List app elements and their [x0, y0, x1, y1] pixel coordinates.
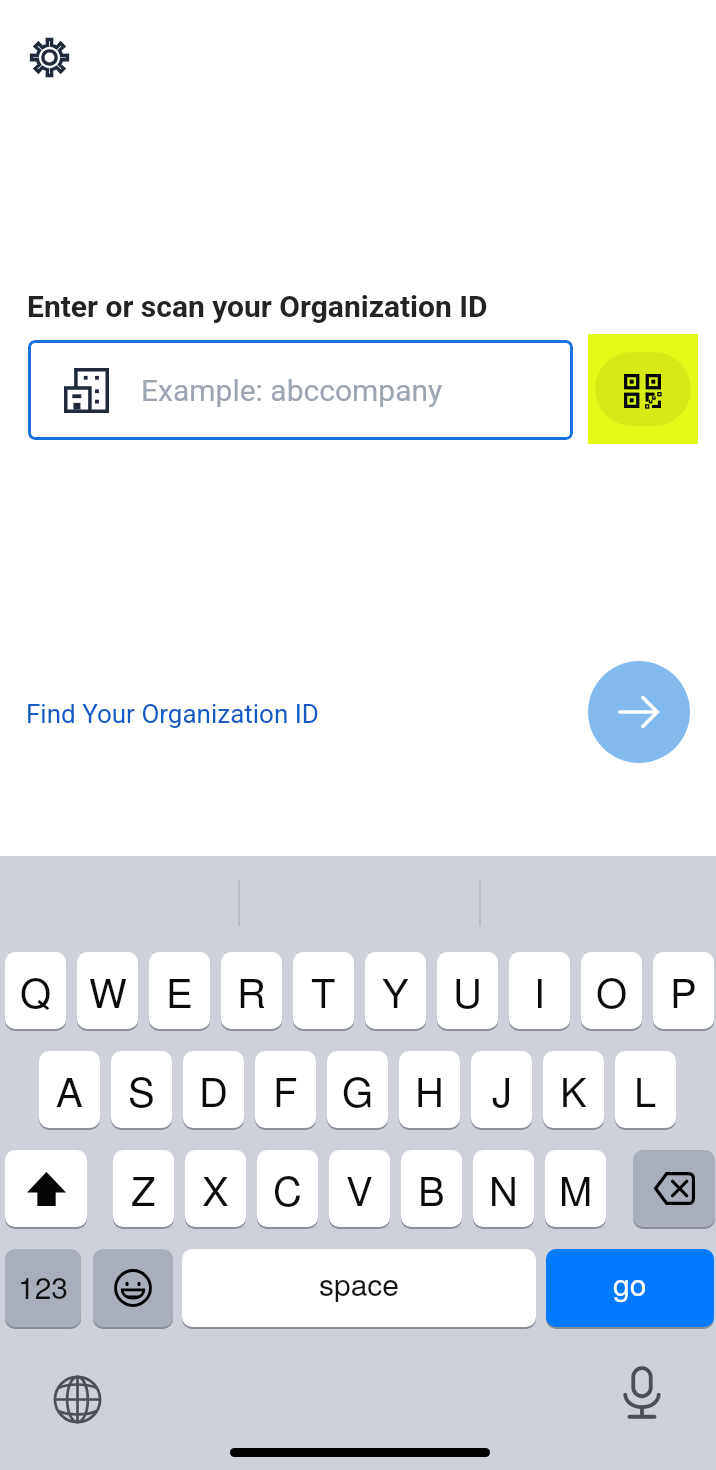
staticText: P — [670, 962, 697, 1019]
staticText: 123 — [18, 1265, 69, 1308]
button[interactable]: I — [509, 952, 570, 1029]
button[interactable]: Settings — [19, 27, 79, 87]
button[interactable]: Dictate — [613, 1364, 671, 1422]
staticText: W — [89, 962, 127, 1019]
staticText: F — [273, 1061, 298, 1118]
button[interactable]: D — [183, 1051, 244, 1128]
button[interactable]: W — [77, 952, 138, 1029]
button[interactable]: Backspace — [633, 1150, 715, 1227]
button[interactable]: Example: abccompany — [28, 340, 573, 440]
button[interactable]: go — [546, 1249, 714, 1327]
button[interactable]: K — [543, 1051, 604, 1128]
staticText: N — [489, 1160, 518, 1217]
staticText: L — [634, 1061, 657, 1118]
staticText: R — [237, 962, 266, 1019]
button[interactable]: Z — [113, 1150, 174, 1227]
button[interactable]: space — [182, 1249, 536, 1327]
staticText: K — [560, 1061, 587, 1118]
staticText: X — [202, 1160, 229, 1217]
staticText: A — [56, 1061, 83, 1118]
staticText: Example: abccompany — [141, 373, 443, 408]
button[interactable]: C — [257, 1150, 318, 1227]
staticText: B — [418, 1160, 445, 1217]
button[interactable]: B — [401, 1150, 462, 1227]
button[interactable]: Change keyboard — [48, 1370, 106, 1428]
button[interactable]: A — [39, 1051, 100, 1128]
button[interactable]: H — [399, 1051, 460, 1128]
staticText: go — [613, 1262, 647, 1305]
staticText: M — [559, 1160, 593, 1217]
staticText: E — [166, 962, 193, 1019]
button[interactable]: F — [255, 1051, 316, 1128]
staticText: I — [534, 962, 546, 1019]
staticText: Y — [382, 962, 409, 1019]
button[interactable]: L — [615, 1051, 676, 1128]
button[interactable]: E — [149, 952, 210, 1029]
staticText: space — [319, 1262, 400, 1305]
button[interactable]: Scan QR code — [588, 334, 698, 444]
button[interactable]: G — [327, 1051, 388, 1128]
staticText: Find Your Organization ID — [26, 699, 319, 729]
button[interactable]: U — [437, 952, 498, 1029]
staticText: S — [128, 1061, 155, 1118]
staticText: D — [199, 1061, 228, 1118]
button[interactable]: 123 — [5, 1249, 81, 1327]
staticText: J — [492, 1061, 512, 1118]
staticText: T — [311, 962, 336, 1019]
button[interactable]: T — [293, 952, 354, 1029]
button[interactable]: V — [329, 1150, 390, 1227]
button[interactable]: Shift — [5, 1150, 87, 1227]
staticText: U — [453, 962, 482, 1019]
button[interactable]: Q — [5, 952, 66, 1029]
button[interactable]: Emoji — [93, 1249, 173, 1327]
button[interactable]: O — [581, 952, 642, 1029]
button[interactable]: R — [221, 952, 282, 1029]
button[interactable]: J — [471, 1051, 532, 1128]
staticText: V — [346, 1160, 373, 1217]
button[interactable]: Next — [588, 661, 690, 763]
button[interactable]: P — [653, 952, 714, 1029]
staticText: G — [342, 1061, 374, 1118]
button[interactable]: M — [545, 1150, 606, 1227]
staticText: O — [596, 962, 628, 1019]
button[interactable]: Find Your Organization ID — [26, 699, 319, 729]
staticText: Q — [20, 962, 52, 1019]
button[interactable]: Y — [365, 952, 426, 1029]
button[interactable]: X — [185, 1150, 246, 1227]
staticText: H — [415, 1061, 444, 1118]
staticText: Z — [131, 1160, 156, 1217]
button[interactable]: S — [111, 1051, 172, 1128]
staticText: Enter or scan your Organization ID — [27, 289, 488, 324]
staticText: C — [273, 1160, 302, 1217]
button[interactable]: N — [473, 1150, 534, 1227]
